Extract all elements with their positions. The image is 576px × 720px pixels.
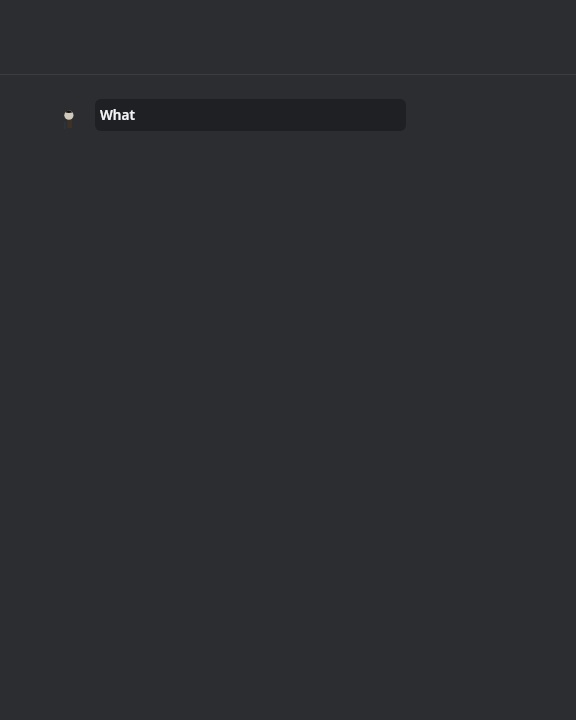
button[interactable]: Open profile (62, 106, 76, 132)
staticText: What (100, 106, 135, 124)
button[interactable]: What (95, 99, 406, 131)
